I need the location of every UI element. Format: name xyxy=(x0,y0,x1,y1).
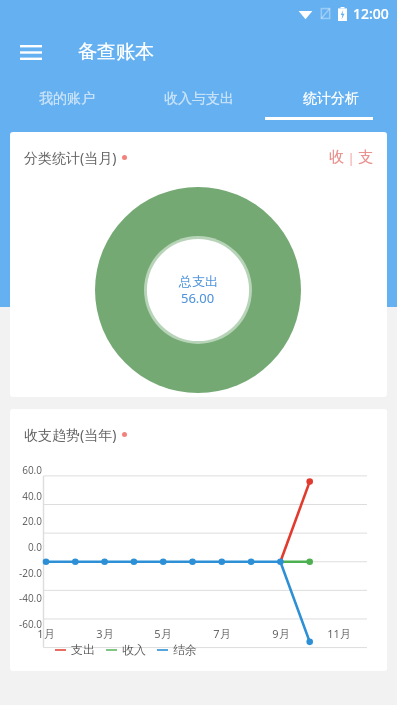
staticText: -20.0 xyxy=(18,566,42,580)
staticText: 支 xyxy=(358,148,373,167)
staticText: 总支出 xyxy=(179,273,218,289)
staticText: 收支趋势(当年) xyxy=(24,425,117,444)
staticText: 结余 xyxy=(173,642,197,657)
staticText: 60.0 xyxy=(22,463,42,477)
staticText: 备查账本 xyxy=(78,40,154,64)
button[interactable]: 收 xyxy=(329,148,373,167)
staticText: -60.0 xyxy=(18,617,42,631)
staticText: 收入与支出 xyxy=(164,90,234,108)
button[interactable]: 统计分析 xyxy=(265,78,397,120)
staticText: 20.0 xyxy=(22,514,42,528)
staticText: 3月 xyxy=(96,626,114,641)
staticText: 0.0 xyxy=(27,540,42,554)
staticText: 9月 xyxy=(272,626,290,641)
button[interactable]: Open navigation menu xyxy=(14,39,48,66)
staticText: 11月 xyxy=(327,626,351,641)
button[interactable]: 收入与支出 xyxy=(133,78,265,120)
staticText: 我的账户 xyxy=(39,90,95,108)
staticText: 56.00 xyxy=(181,289,215,307)
staticText: 1月 xyxy=(37,626,55,641)
staticText: 收入 xyxy=(122,642,146,657)
staticText: 5月 xyxy=(154,626,172,641)
staticText: 统计分析 xyxy=(303,90,359,108)
staticText: | xyxy=(344,149,358,167)
staticText: -40.0 xyxy=(18,591,42,605)
staticText: 分类统计(当月) xyxy=(24,148,117,167)
staticText: 支出 xyxy=(71,642,95,657)
staticText: 7月 xyxy=(213,626,231,641)
staticText: 收 xyxy=(329,148,344,167)
button[interactable]: 我的账户 xyxy=(0,78,133,120)
staticText: 12:00 xyxy=(353,4,389,23)
staticText: 40.0 xyxy=(22,489,42,503)
